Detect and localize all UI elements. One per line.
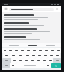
button[interactable]: Key <box>42 53 48 58</box>
button[interactable]: Menu <box>4 7 8 11</box>
button[interactable]: Key <box>37 48 43 53</box>
button[interactable]: Key <box>2 48 7 53</box>
button[interactable] <box>41 43 59 47</box>
button[interactable]: Key <box>10 53 17 58</box>
button[interactable]: Key <box>11 58 17 63</box>
button[interactable]: Backspace <box>53 58 61 63</box>
button[interactable]: Key <box>17 53 24 58</box>
button[interactable] <box>9 8 54 11</box>
button[interactable]: Key <box>55 48 61 53</box>
button[interactable]: Key <box>17 58 23 63</box>
button[interactable]: Key <box>54 53 60 58</box>
button[interactable]: Key <box>3 53 10 58</box>
button[interactable] <box>2 21 61 27</box>
button[interactable]: Key <box>29 58 35 63</box>
button[interactable]: Key <box>19 48 25 53</box>
button[interactable]: Key <box>31 48 37 53</box>
button[interactable]: Key <box>35 58 41 63</box>
button[interactable]: Shift <box>2 58 11 63</box>
button[interactable]: Space <box>16 63 44 68</box>
button[interactable]: Key <box>24 53 30 58</box>
button[interactable] <box>2 35 61 41</box>
button[interactable]: Key <box>41 58 47 63</box>
button[interactable] <box>2 27 61 35</box>
button[interactable]: Key <box>30 53 36 58</box>
button[interactable]: Comma <box>10 63 16 68</box>
button[interactable]: Period <box>44 63 51 68</box>
button[interactable] <box>4 43 23 47</box>
button[interactable]: Key <box>48 53 54 58</box>
button[interactable]: Key <box>47 58 53 63</box>
button[interactable]: Key <box>25 48 31 53</box>
button[interactable] <box>2 13 61 21</box>
button[interactable]: Clear <box>55 7 59 11</box>
button[interactable]: Key <box>43 48 49 53</box>
button[interactable]: Search <box>51 63 61 68</box>
button[interactable]: Symbols <box>2 63 10 68</box>
button[interactable]: Key <box>23 58 29 63</box>
button[interactable]: Key <box>36 53 42 58</box>
button[interactable]: Key <box>7 48 13 53</box>
button[interactable]: Key <box>49 48 55 53</box>
button[interactable] <box>23 43 41 47</box>
button[interactable]: Key <box>13 48 19 53</box>
